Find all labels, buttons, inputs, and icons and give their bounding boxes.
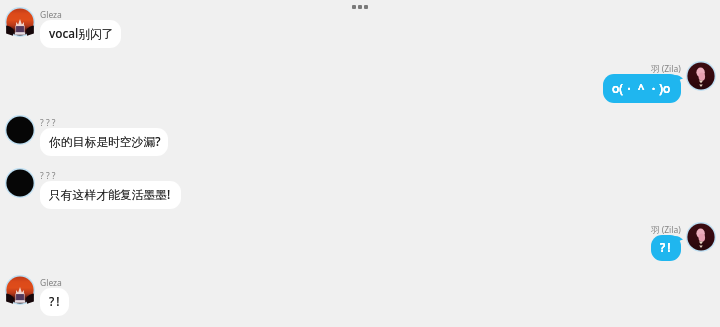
button[interactable]: ? ! — [651, 235, 681, 261]
staticText: o(・ ^ ・)o — [612, 80, 671, 96]
button[interactable]: Gleza profile picture — [5, 7, 35, 37]
button[interactable]: o(・ ^ ・)o — [603, 74, 681, 103]
button[interactable]: 你的目标是时空沙漏? — [40, 128, 168, 156]
staticText: ? ! — [49, 293, 60, 309]
staticText: 只有这样才能复活墨墨! — [49, 186, 171, 202]
staticText: ? ? ? — [40, 170, 56, 182]
staticText: vocal别闪了 — [49, 25, 114, 41]
staticText: ? ! — [660, 239, 671, 255]
staticText: 你的目标是时空沙漏? — [49, 133, 161, 149]
staticText: o(・ ^ ・)o — [612, 80, 671, 96]
staticText: ? ? ? — [40, 117, 56, 129]
button[interactable]: Gleza profile picture — [5, 275, 35, 305]
staticText: Gleza — [40, 9, 62, 21]
staticText: 你的目标是时空沙漏? — [49, 133, 161, 149]
button[interactable]: 只有这样才能复活墨墨! — [40, 181, 181, 209]
button[interactable]: Load earlier messages — [352, 5, 368, 9]
staticText: 羽 (Zila) — [651, 224, 681, 236]
button[interactable]: vocal别闪了 — [40, 20, 121, 48]
staticText: ? ! — [660, 239, 671, 255]
button[interactable]: 羽 (Zila) profile picture — [686, 222, 716, 252]
button[interactable]: ? ! — [40, 288, 69, 316]
staticText: vocal别闪了 — [49, 25, 114, 41]
staticText: Gleza — [40, 277, 62, 289]
staticText: 羽 (Zila) — [651, 63, 681, 75]
button[interactable]: ? ? ? profile picture — [5, 115, 35, 145]
staticText: 只有这样才能复活墨墨! — [49, 186, 171, 202]
button[interactable]: 羽 (Zila) profile picture — [686, 61, 716, 91]
staticText: ? ! — [49, 293, 60, 309]
button[interactable]: ? ? ? profile picture — [5, 168, 35, 198]
